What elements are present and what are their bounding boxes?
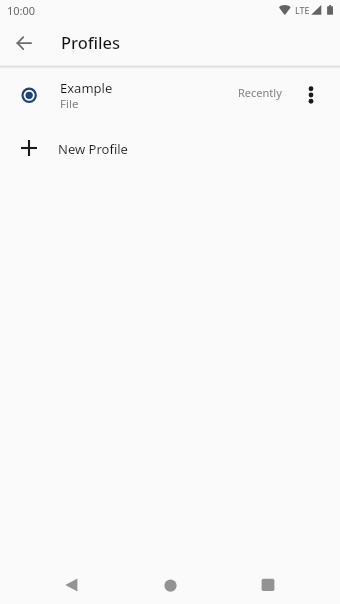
button[interactable]: More options (295, 79, 327, 111)
staticText: Example (60, 79, 113, 97)
button[interactable]: Home (153, 568, 187, 602)
staticText: 10:00 (7, 3, 36, 18)
staticText: LTE (295, 4, 310, 16)
staticText: New Profile (58, 140, 128, 158)
button[interactable]: Recent apps (251, 568, 285, 602)
button[interactable]: Back (54, 568, 88, 602)
button[interactable]: Select Example profile (12, 78, 45, 111)
staticText: Profiles (61, 31, 121, 53)
staticText: File (60, 96, 79, 112)
staticText: Recently (238, 85, 282, 100)
button[interactable]: New Profile (0, 124, 340, 174)
button[interactable]: Back (12, 30, 36, 54)
button[interactable]: Select Example profile (0, 67, 340, 124)
